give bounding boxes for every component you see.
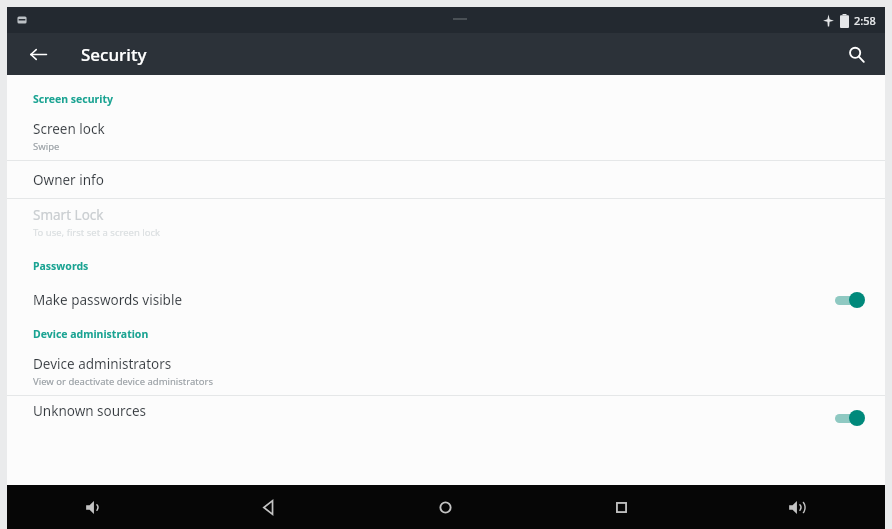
button[interactable]: Smart Lock: [7, 199, 885, 246]
button[interactable]: Unknown sources: [7, 396, 885, 426]
button[interactable]: Back: [21, 37, 55, 71]
button[interactable]: Recents: [533, 485, 709, 529]
staticText: Screen lock: [33, 120, 105, 138]
button[interactable]: Back: [182, 485, 357, 529]
staticText: Make passwords visible: [33, 291, 831, 309]
staticText: Owner info: [33, 171, 104, 189]
button[interactable]: Home: [357, 485, 533, 529]
staticText: Device administration: [33, 327, 149, 341]
staticText: Unknown sources: [33, 402, 831, 420]
staticText: View or deactivate device administrators: [33, 375, 213, 388]
button[interactable]: Volume down: [7, 485, 182, 529]
staticText: To use, first set a screen lock: [33, 226, 161, 239]
staticText: 2:58: [854, 13, 876, 28]
button[interactable]: Owner info: [7, 161, 885, 198]
staticText: Smart Lock: [33, 206, 104, 224]
staticText: Device administrators: [33, 355, 172, 373]
button[interactable]: Make passwords visible: [7, 280, 885, 320]
button[interactable]: Search: [839, 37, 873, 71]
staticText: Swipe: [33, 140, 60, 153]
staticText: Screen security: [33, 92, 113, 106]
button[interactable]: Screen lock: [7, 113, 885, 160]
staticText: Security: [81, 43, 147, 66]
staticText: Passwords: [33, 259, 89, 273]
button[interactable]: Volume up: [709, 485, 885, 529]
button[interactable]: Device administrators: [7, 348, 885, 395]
